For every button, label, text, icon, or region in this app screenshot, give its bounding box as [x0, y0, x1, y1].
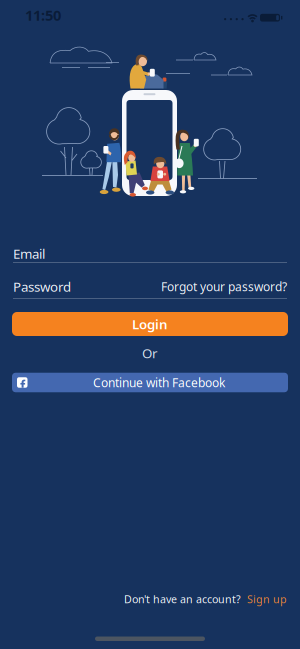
staticText: Forgot your password?	[161, 278, 287, 294]
staticText: Password	[13, 278, 71, 295]
button[interactable]: Continue with Facebook	[12, 373, 288, 392]
button[interactable]: Login	[12, 312, 288, 336]
staticText: Don't have an account?	[124, 592, 247, 606]
staticText: Email	[13, 245, 45, 262]
staticText: Login	[132, 315, 168, 333]
staticText: Sign up	[247, 592, 287, 606]
staticText: 11:50	[25, 5, 61, 25]
staticText: Or	[142, 344, 158, 362]
button[interactable]: Sign up	[247, 592, 287, 606]
staticText: Continue with Facebook	[93, 374, 225, 390]
button[interactable]: Forgot your password?	[161, 278, 287, 294]
